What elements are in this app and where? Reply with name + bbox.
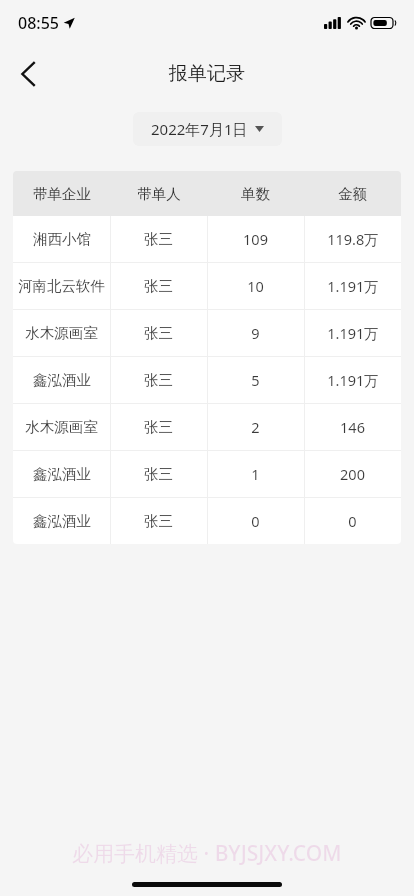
staticText: 2 <box>251 417 260 437</box>
staticText: 08:55 <box>18 12 59 34</box>
button[interactable]: 鑫泓酒业 <box>13 498 401 544</box>
staticText: 鑫泓酒业 <box>33 371 91 389</box>
button[interactable]: 湘西小馆 <box>13 216 401 262</box>
staticText: 1.191万 <box>327 323 379 343</box>
staticText: 河南北云软件 <box>18 277 105 295</box>
staticText: 必用手机精选 · BYJSJXY.COM <box>72 839 342 868</box>
staticText: 张三 <box>144 277 173 295</box>
staticText: 金额 <box>338 185 367 203</box>
staticText: 水木源画室 <box>25 418 98 436</box>
button[interactable]: 2022年7月1日 <box>133 112 282 146</box>
button[interactable]: 鑫泓酒业 <box>13 357 401 403</box>
button[interactable]: 水木源画室 <box>13 310 401 356</box>
staticText: 带单人 <box>137 185 181 203</box>
staticText: 1 <box>251 464 260 484</box>
staticText: 水木源画室 <box>25 324 98 342</box>
button[interactable]: Back <box>6 52 50 96</box>
staticText: 单数 <box>241 185 270 203</box>
staticText: 湘西小馆 <box>33 230 91 248</box>
staticText: 张三 <box>144 418 173 436</box>
staticText: 张三 <box>144 230 173 248</box>
staticText: 报单记录 <box>169 62 245 86</box>
staticText: 9 <box>251 323 260 343</box>
button[interactable]: 鑫泓酒业 <box>13 451 401 497</box>
staticText: 1.191万 <box>327 370 379 390</box>
staticText: 109 <box>243 229 268 249</box>
staticText: 鑫泓酒业 <box>33 465 91 483</box>
staticText: 146 <box>340 417 365 437</box>
staticText: 0 <box>251 511 260 531</box>
staticText: 张三 <box>144 371 173 389</box>
staticText: 带单企业 <box>33 185 91 203</box>
button[interactable]: 河南北云软件 <box>13 263 401 309</box>
staticText: 119.8万 <box>327 229 379 249</box>
staticText: 张三 <box>144 465 173 483</box>
staticText: 张三 <box>144 324 173 342</box>
staticText: 张三 <box>144 512 173 530</box>
staticText: 1.191万 <box>327 276 379 296</box>
staticText: 200 <box>340 464 365 484</box>
staticText: 5 <box>251 370 260 390</box>
button[interactable]: 水木源画室 <box>13 404 401 450</box>
staticText: 2022年7月1日 <box>151 119 248 139</box>
staticText: 10 <box>247 276 264 296</box>
staticText: 0 <box>348 511 357 531</box>
staticText: 鑫泓酒业 <box>33 512 91 530</box>
